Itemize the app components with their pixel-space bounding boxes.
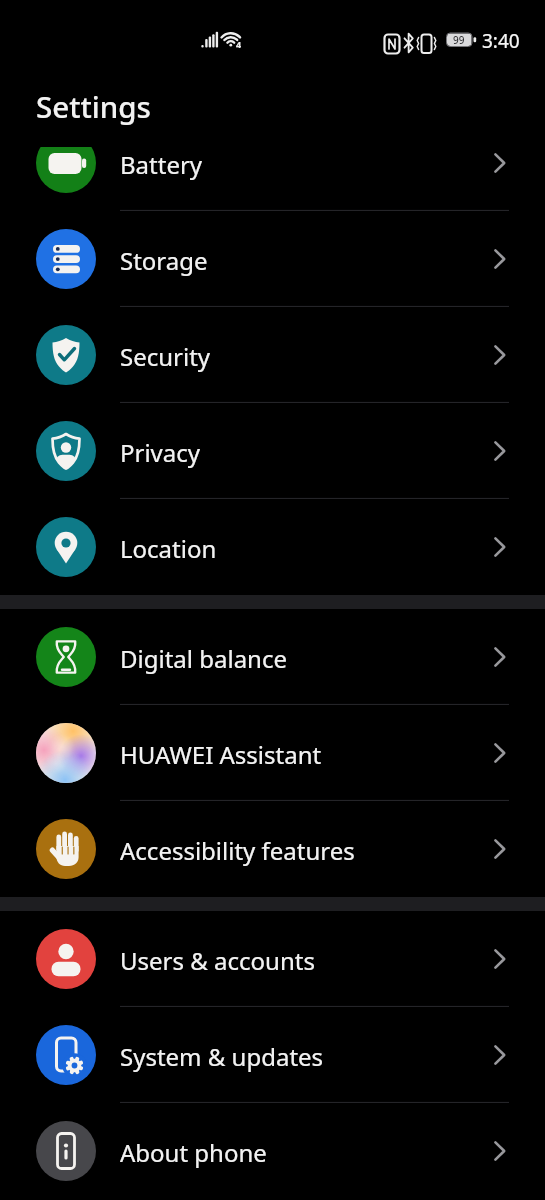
staticText: 4: [236, 38, 242, 50]
staticText: About phone: [120, 1136, 267, 1169]
staticText: 99: [453, 33, 465, 47]
staticText: Privacy: [120, 436, 201, 469]
button[interactable]: Storage: [0, 211, 545, 307]
button[interactable]: Privacy: [0, 403, 545, 499]
staticText: Battery: [120, 148, 203, 181]
button[interactable]: Security: [0, 307, 545, 403]
staticText: Settings: [36, 86, 151, 126]
staticText: Storage: [120, 244, 208, 277]
staticText: Location: [120, 532, 217, 565]
staticText: Digital balance: [120, 642, 287, 675]
button[interactable]: HUAWEI Assistant: [0, 705, 545, 801]
button[interactable]: Accessibility features: [0, 801, 545, 897]
button[interactable]: Digital balance: [0, 609, 545, 705]
staticText: HUAWEI Assistant: [120, 738, 322, 771]
button[interactable]: Battery: [0, 115, 545, 211]
button[interactable]: Location: [0, 499, 545, 595]
button[interactable]: System & updates: [0, 1007, 545, 1103]
button[interactable]: About phone: [0, 1103, 545, 1199]
staticText: Security: [120, 340, 211, 373]
staticText: Accessibility features: [120, 834, 355, 867]
staticText: System & updates: [120, 1040, 324, 1073]
staticText: 3:40: [482, 28, 520, 54]
button[interactable]: Users & accounts: [0, 911, 545, 1007]
staticText: Users & accounts: [120, 944, 315, 977]
